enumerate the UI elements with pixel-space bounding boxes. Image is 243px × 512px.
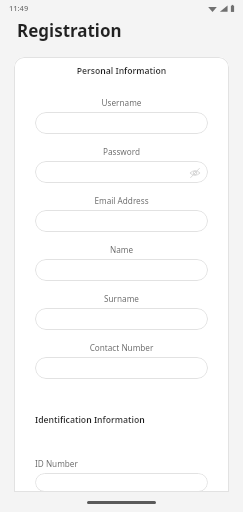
button[interactable]	[35, 259, 208, 281]
staticText: Name	[35, 244, 208, 255]
button[interactable]: Show password	[188, 166, 201, 179]
staticText: Password	[35, 146, 208, 157]
staticText: ID Number	[35, 458, 208, 469]
staticText: Surname	[35, 293, 208, 304]
staticText: Registration	[17, 19, 122, 42]
button[interactable]	[35, 357, 208, 379]
staticText: Personal Information	[35, 65, 208, 77]
button[interactable]	[35, 473, 208, 492]
button[interactable]	[35, 210, 208, 232]
staticText: Contact Number	[35, 342, 208, 353]
staticText: Email Address	[35, 195, 208, 206]
button[interactable]	[35, 308, 208, 330]
staticText: Username	[35, 97, 208, 108]
staticText: 11:49	[9, 3, 29, 13]
staticText: Identification Information	[35, 414, 208, 426]
button[interactable]: Show password	[35, 161, 208, 183]
button[interactable]	[35, 112, 208, 134]
